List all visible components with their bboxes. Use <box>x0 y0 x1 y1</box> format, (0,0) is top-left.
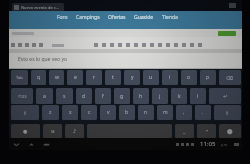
button[interactable]: u <box>143 70 159 85</box>
staticText: Campings <box>76 14 100 21</box>
button[interactable]: c <box>81 105 97 120</box>
staticText: ● <box>23 128 28 134</box>
button[interactable]: a <box>36 88 53 104</box>
button[interactable]: h <box>133 88 149 104</box>
button[interactable]: q <box>31 70 46 85</box>
button[interactable]: ⇧ <box>214 105 241 120</box>
staticText: d <box>82 93 86 100</box>
button[interactable]: v <box>100 105 116 120</box>
button[interactable]: s <box>56 88 73 104</box>
button[interactable]: t <box>105 70 121 85</box>
staticText: !# <box>51 129 55 134</box>
button[interactable]: l <box>190 88 206 104</box>
staticText: Tienda <box>162 14 178 21</box>
button[interactable]: ?123 <box>11 88 33 104</box>
button[interactable]: r <box>86 70 102 85</box>
staticText: u <box>149 74 153 81</box>
button[interactable]: m <box>157 105 173 120</box>
button[interactable]: !# <box>43 124 62 138</box>
button[interactable]: Recent apps <box>42 140 51 149</box>
staticText: s <box>63 93 66 100</box>
button[interactable]: , <box>176 105 192 120</box>
button[interactable]: x <box>62 105 78 120</box>
button[interactable]: o <box>181 70 197 85</box>
button[interactable]: ♪ <box>65 124 84 138</box>
staticText: i <box>169 74 171 81</box>
button[interactable]: Guaside <box>133 13 155 22</box>
button[interactable]: Ofertas <box>107 13 127 22</box>
button[interactable]: Home <box>27 140 36 149</box>
staticText: g <box>120 93 124 100</box>
staticText: ⬤ <box>227 128 233 134</box>
button[interactable]: Tab <box>11 70 28 85</box>
button[interactable]: • <box>197 124 216 138</box>
staticText: Foro <box>57 14 68 21</box>
staticText: b <box>125 109 129 116</box>
staticText: m <box>163 109 168 116</box>
button[interactable]: ↵ <box>209 88 241 104</box>
button[interactable]: ⬤ <box>219 124 241 138</box>
button[interactable]: . <box>195 105 211 120</box>
button[interactable]: Nuevo evento de c… <box>12 3 64 11</box>
staticText: f <box>102 93 104 100</box>
staticText: ♪ <box>73 128 77 134</box>
button[interactable]: ⇧ <box>11 105 39 120</box>
button[interactable]: z <box>42 105 59 120</box>
staticText: 11:05 <box>200 140 216 148</box>
staticText: j <box>159 93 161 100</box>
staticText: p.m. <box>221 142 229 147</box>
button[interactable]: f <box>95 88 111 104</box>
button[interactable]: Campings <box>75 13 101 22</box>
button[interactable]: Tienda <box>161 13 179 22</box>
button[interactable]: e <box>67 70 83 85</box>
button[interactable]: y <box>124 70 140 85</box>
button[interactable]: i <box>162 70 178 85</box>
staticText: ⌫ <box>226 75 234 81</box>
staticText: Esto es lo que veo yo <box>18 56 67 63</box>
staticText: o <box>187 74 191 81</box>
button[interactable]: w <box>49 70 64 85</box>
staticText: Guaside <box>134 14 154 21</box>
staticText: q <box>37 74 41 81</box>
staticText: x <box>69 109 72 116</box>
button[interactable]: g <box>114 88 130 104</box>
staticText: Tab <box>16 75 23 80</box>
button[interactable]: Back <box>12 140 21 149</box>
button[interactable]: Foro <box>56 13 69 22</box>
button[interactable]: _ <box>175 124 194 138</box>
button[interactable]: p <box>200 70 216 85</box>
button[interactable]: ● <box>11 124 40 138</box>
staticText: t <box>112 74 114 81</box>
staticText: n <box>144 109 148 116</box>
button[interactable]: j <box>152 88 168 104</box>
button[interactable]: k <box>171 88 187 104</box>
button[interactable]: d <box>76 88 92 104</box>
button[interactable]: n <box>138 105 154 120</box>
button[interactable]: ⌫ <box>219 70 241 85</box>
staticText: w <box>55 74 59 81</box>
button[interactable]: b <box>119 105 135 120</box>
staticText: ↵ <box>223 93 228 99</box>
button[interactable] <box>218 31 236 36</box>
